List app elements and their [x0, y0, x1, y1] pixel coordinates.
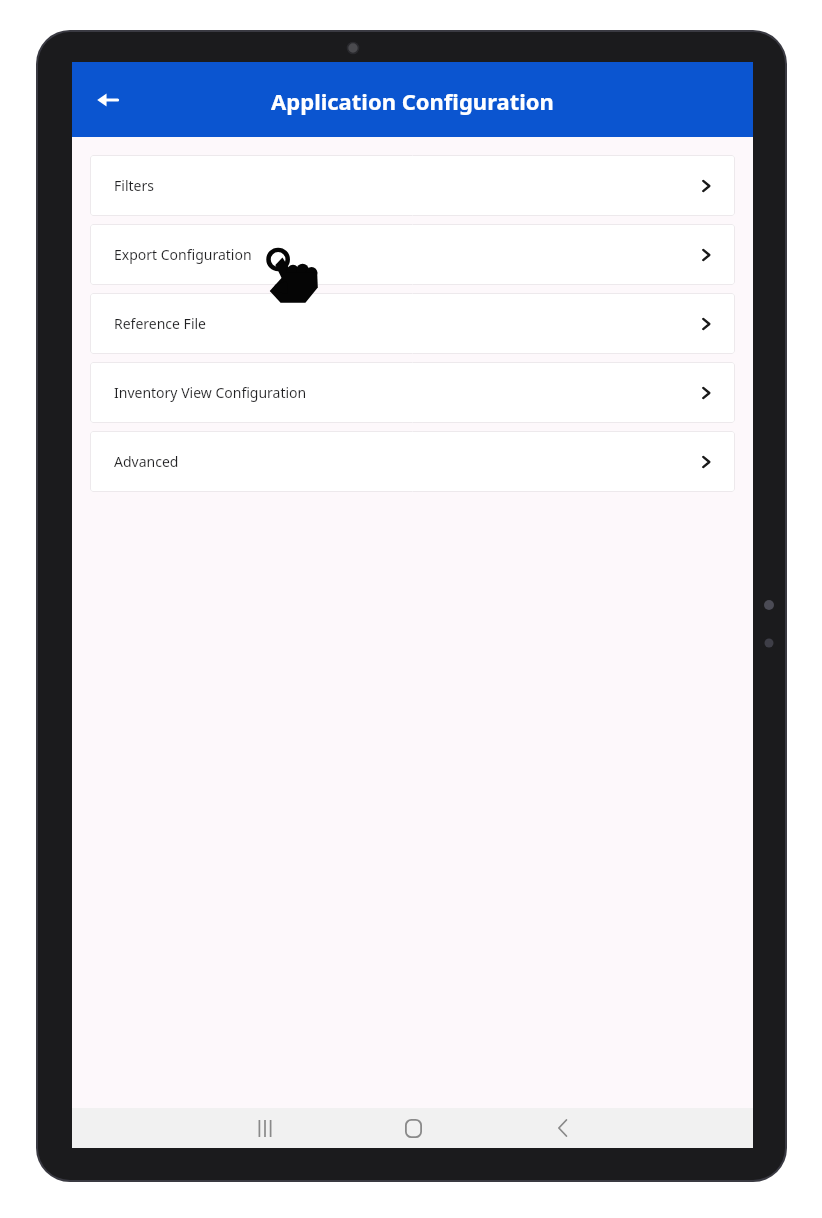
button[interactable]: Recent apps — [239, 1108, 291, 1148]
staticText: Advanced — [114, 452, 699, 471]
button[interactable]: Export Configuration — [90, 224, 735, 285]
staticText: Application Configuration — [271, 86, 554, 116]
button[interactable]: Back — [536, 1108, 588, 1148]
button[interactable]: Inventory View Configuration — [90, 362, 735, 423]
staticText: Inventory View Configuration — [114, 383, 699, 402]
staticText: Filters — [114, 176, 699, 195]
button[interactable]: Back — [84, 76, 132, 124]
button[interactable]: Reference File — [90, 293, 735, 354]
button[interactable]: Advanced — [90, 431, 735, 492]
staticText: Export Configuration — [114, 245, 699, 264]
button[interactable]: Home — [387, 1108, 439, 1148]
button[interactable]: Filters — [90, 155, 735, 216]
staticText: Reference File — [114, 314, 699, 333]
